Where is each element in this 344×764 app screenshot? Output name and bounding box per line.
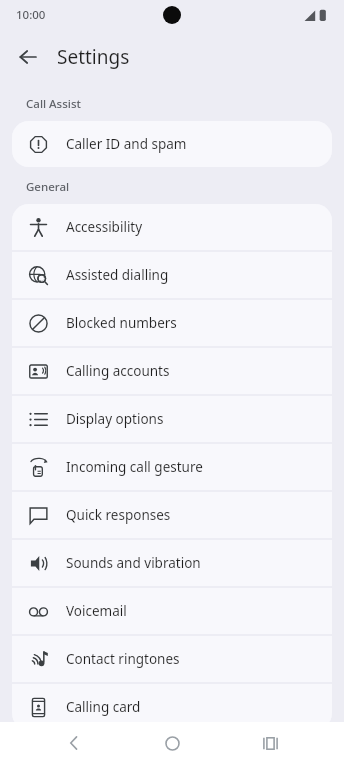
staticText: Calling accounts	[66, 362, 170, 380]
staticText: Advanced	[26, 742, 80, 758]
staticText: Display options	[66, 410, 164, 428]
staticText: Calling card	[66, 698, 141, 716]
button[interactable]: Sounds and vibration	[12, 540, 332, 586]
button[interactable]: Quick responses	[12, 492, 332, 538]
button[interactable]: Back	[8, 37, 48, 77]
button[interactable]: Blocked numbers	[12, 300, 332, 346]
button[interactable]: Display options	[12, 396, 332, 442]
button[interactable]: Caller ID and spam	[12, 121, 332, 167]
staticText: Contact ringtones	[66, 650, 180, 668]
button[interactable]: Calling accounts	[12, 348, 332, 394]
button[interactable]: Assisted dialling	[12, 252, 332, 298]
staticText: Accessibility	[66, 218, 143, 236]
button[interactable]: Voicemail	[12, 588, 332, 634]
button[interactable]: Incoming call gesture	[12, 444, 332, 490]
button[interactable]: Contact ringtones	[12, 636, 332, 682]
button[interactable]: Recents	[246, 722, 294, 764]
staticText: Assisted dialling	[66, 266, 169, 284]
button[interactable]: Calling card	[12, 684, 332, 730]
staticText: Settings	[57, 44, 130, 70]
staticText: Voicemail	[66, 602, 127, 620]
button[interactable]: Accessibility	[12, 204, 332, 250]
staticText: Call Assist	[26, 96, 81, 112]
staticText: Caller ID and spam	[66, 135, 187, 153]
staticText: Sounds and vibration	[66, 554, 201, 572]
staticText: Blocked numbers	[66, 314, 177, 332]
staticText: Quick responses	[66, 506, 171, 524]
staticText: Incoming call gesture	[66, 458, 203, 476]
button[interactable]: Home	[148, 722, 196, 764]
button[interactable]: Back	[50, 722, 98, 764]
staticText: 10:00	[16, 7, 46, 23]
staticText: General	[26, 179, 70, 195]
